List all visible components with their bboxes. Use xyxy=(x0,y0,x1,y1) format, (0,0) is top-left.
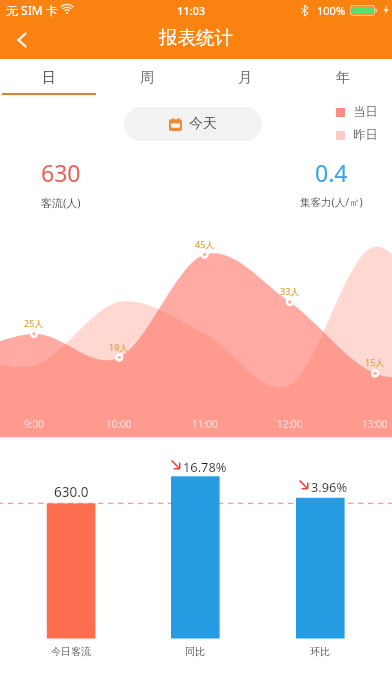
button[interactable]: 年 xyxy=(294,59,392,96)
button[interactable]: 日 xyxy=(0,59,98,96)
staticText: 集客力(人/㎡) xyxy=(300,195,363,209)
staticText: 16.78% xyxy=(183,458,227,475)
staticText: 周 xyxy=(140,69,154,87)
staticText: 9:00 xyxy=(24,417,44,431)
staticText: 昨日 xyxy=(353,127,378,143)
staticText: 环比 xyxy=(310,645,330,658)
staticText: 0.4 xyxy=(315,157,348,188)
staticText: 今日客流 xyxy=(51,645,91,658)
staticText: 15人 xyxy=(365,356,385,368)
staticText: 今天 xyxy=(189,115,217,133)
staticText: 3.96% xyxy=(311,478,348,495)
staticText: 无 SIM 卡 xyxy=(6,2,58,18)
staticText: 年 xyxy=(336,69,350,87)
staticText: 19人 xyxy=(109,341,129,353)
staticText: 日 xyxy=(42,69,56,87)
staticText: 当日 xyxy=(353,104,378,120)
button[interactable]: 月 xyxy=(196,59,294,96)
staticText: 33人 xyxy=(280,285,300,297)
staticText: 报表统计 xyxy=(159,26,233,49)
button[interactable]: Back xyxy=(0,20,44,59)
button[interactable]: 周 xyxy=(98,59,196,96)
staticText: 10:00 xyxy=(106,417,132,431)
staticText: 100% xyxy=(317,3,346,18)
staticText: 45人 xyxy=(195,238,215,250)
button[interactable]: 今天 xyxy=(124,107,262,141)
staticText: 同比 xyxy=(185,645,205,658)
staticText: 客流(人) xyxy=(41,195,81,210)
staticText: 630.0 xyxy=(54,483,89,501)
staticText: 12:00 xyxy=(277,417,303,431)
staticText: 13:00 xyxy=(362,417,388,431)
staticText: 25人 xyxy=(24,317,44,329)
staticText: 630 xyxy=(41,157,81,188)
staticText: 11:00 xyxy=(192,417,218,431)
staticText: 月 xyxy=(238,69,252,87)
staticText: 11:03 xyxy=(177,3,206,18)
